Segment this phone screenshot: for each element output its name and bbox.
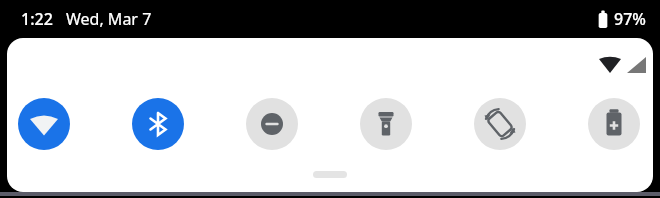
button[interactable]: Battery Saver (588, 98, 640, 150)
staticText: 97% (614, 8, 646, 30)
button[interactable]: Wi-Fi (18, 98, 70, 150)
button[interactable]: Do Not Disturb (246, 98, 298, 150)
button[interactable]: Flashlight (360, 98, 412, 150)
staticText: 1:22 (21, 8, 53, 30)
button[interactable]: Auto-rotate (474, 98, 526, 150)
button[interactable] (313, 171, 347, 178)
staticText: Wed, Mar 7 (66, 8, 152, 30)
button[interactable]: Bluetooth (132, 98, 184, 150)
